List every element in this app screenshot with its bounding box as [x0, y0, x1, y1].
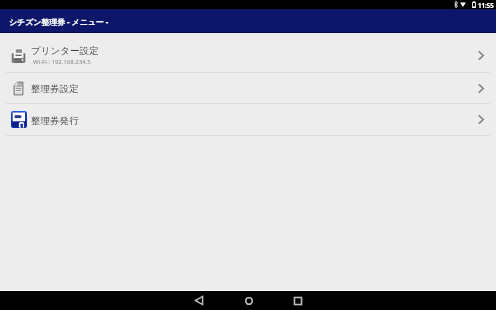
staticText: 整理券発行: [31, 115, 79, 127]
staticText: プリンター設定: [31, 45, 99, 57]
staticText: シチズン整理券 - メニュー -: [9, 17, 109, 28]
button[interactable]: Home: [223, 291, 273, 310]
button[interactable]: Recents: [273, 291, 323, 310]
staticText: 11:55: [478, 1, 494, 9]
button[interactable]: Back: [173, 291, 223, 310]
staticText: 整理券設定: [31, 83, 79, 95]
staticText: Wi-Fi : 192.168.234.5: [33, 58, 91, 66]
button[interactable]: プリンター設定: [0, 33, 496, 72]
button[interactable]: 整理券発行: [0, 104, 496, 135]
button[interactable]: 整理券設定: [0, 73, 496, 103]
